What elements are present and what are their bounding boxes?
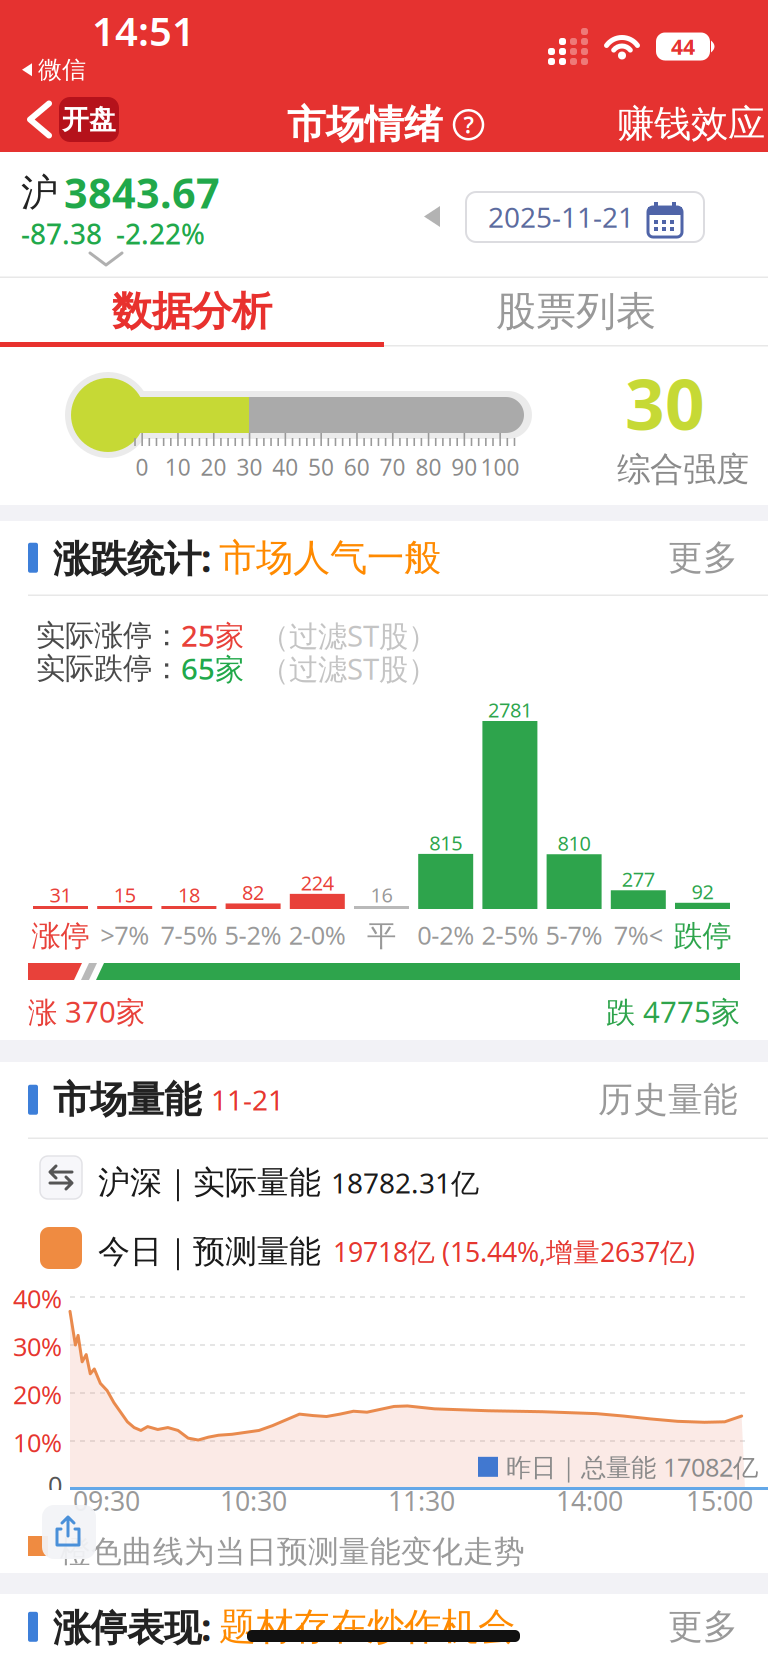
staticText: 市场量能 xyxy=(53,1077,201,1123)
staticText: 涨 370家 xyxy=(28,992,145,1031)
staticText: 市场情绪 xyxy=(287,101,443,148)
staticText: 题材存在炒作机会 xyxy=(219,1604,515,1650)
staticText: 09:30 xyxy=(73,1483,140,1518)
staticText: 2025-11-21 xyxy=(488,198,634,236)
staticText: 平 xyxy=(367,918,396,954)
staticText: 市场人气一般 xyxy=(219,535,441,581)
staticText: 10 xyxy=(165,452,191,482)
button[interactable]: Previous day xyxy=(424,206,440,227)
staticText: 涨停 xyxy=(31,918,89,954)
staticText: 股票列表 xyxy=(496,287,656,336)
staticText: 跌停 xyxy=(673,918,731,954)
staticText: 65家 xyxy=(181,649,244,688)
staticText: 14:51 xyxy=(92,4,195,57)
staticText: 18782.31亿 xyxy=(331,1164,479,1201)
staticText: 更多 xyxy=(668,536,738,579)
staticText: 2-5% xyxy=(481,918,538,952)
button[interactable]: Help xyxy=(453,109,484,140)
staticText: 10:30 xyxy=(220,1483,287,1518)
staticText: 实际涨停： xyxy=(36,617,181,653)
staticText: 40% xyxy=(13,1281,62,1315)
staticText: 815 xyxy=(429,829,462,856)
button[interactable]: 股票列表 xyxy=(384,281,768,342)
staticText: 14:00 xyxy=(556,1483,623,1518)
staticText: 50 xyxy=(308,452,334,482)
staticText: 实际跌停： xyxy=(36,650,181,686)
button[interactable]: 微信 xyxy=(22,55,86,84)
staticText: 0 xyxy=(48,1468,62,1502)
staticText: 16 xyxy=(370,881,392,908)
staticText: 100 xyxy=(480,452,519,482)
staticText: （过滤ST股） xyxy=(260,616,437,655)
staticText: 历史量能 xyxy=(598,1078,738,1121)
staticText: 19718亿 (15.44%,增量2637亿) xyxy=(333,1234,695,1269)
button[interactable]: 历史量能 xyxy=(598,1078,738,1121)
staticText: 80 xyxy=(415,452,441,482)
staticText: 沪 xyxy=(21,170,58,216)
button[interactable]: 数据分析 xyxy=(0,281,384,342)
staticText: 90 xyxy=(451,452,477,482)
staticText: 微信 xyxy=(38,55,86,84)
staticText: 涨停表现: xyxy=(53,1602,211,1652)
staticText: ? xyxy=(463,110,473,140)
button[interactable]: Collapse xyxy=(88,251,124,267)
staticText: 224 xyxy=(301,869,334,896)
staticText: 涨跌统计: xyxy=(53,533,211,583)
staticText: 赚钱效应 xyxy=(617,101,765,147)
staticText: 7-5% xyxy=(160,918,217,952)
staticText: 810 xyxy=(558,830,591,856)
staticText: 3843.67 xyxy=(64,165,220,220)
staticText: 30% xyxy=(13,1329,62,1363)
staticText: 数据分析 xyxy=(112,287,272,336)
staticText: >7% xyxy=(100,918,149,952)
staticText: 277 xyxy=(622,866,655,892)
staticText: 18 xyxy=(178,881,200,908)
staticText: 30 xyxy=(625,357,705,449)
staticText: 昨日｜总量能 17082亿 xyxy=(506,1450,758,1484)
staticText: 11-21 xyxy=(211,1081,284,1118)
staticText: 25家 xyxy=(181,616,244,655)
staticText: 7%< xyxy=(614,918,663,952)
staticText: 沪深｜实际量能 xyxy=(98,1163,321,1202)
button[interactable]: Back xyxy=(27,97,119,142)
staticText: 70 xyxy=(380,452,406,482)
staticText: 15:00 xyxy=(686,1483,753,1518)
staticText: 综合强度 xyxy=(617,449,749,490)
staticText: 0-2% xyxy=(417,918,474,952)
staticText: 20% xyxy=(13,1377,62,1411)
button[interactable]: Share xyxy=(42,1505,96,1559)
staticText: 82 xyxy=(242,879,264,906)
staticText: 60 xyxy=(344,452,370,482)
staticText: 橙色曲线为当日预测量能变化走势 xyxy=(60,1533,525,1571)
staticText: 11:30 xyxy=(388,1483,455,1518)
staticText: 2781 xyxy=(488,696,532,723)
staticText: 5-2% xyxy=(225,918,282,952)
staticText: 92 xyxy=(691,878,713,905)
staticText: 44 xyxy=(671,32,695,61)
staticText: 跌 4775家 xyxy=(606,992,740,1031)
staticText: 2-0% xyxy=(289,918,346,952)
staticText: 开盘 xyxy=(62,103,116,136)
staticText: 20 xyxy=(201,452,227,482)
staticText: 40 xyxy=(272,452,298,482)
staticText: 10% xyxy=(13,1425,62,1459)
staticText: （过滤ST股） xyxy=(260,649,437,688)
staticText: 30 xyxy=(236,452,262,482)
staticText: 31 xyxy=(49,881,71,908)
staticText: 15 xyxy=(114,881,136,908)
button[interactable]: 更多 xyxy=(668,536,738,579)
button[interactable]: Choose date xyxy=(466,192,704,242)
staticText: 今日｜预测量能 xyxy=(98,1232,321,1271)
staticText: 更多 xyxy=(668,1605,738,1648)
button[interactable]: 赚钱效应 xyxy=(617,101,765,147)
button[interactable]: 更多 xyxy=(668,1605,738,1648)
staticText: -87.38 -2.22% xyxy=(21,215,205,252)
staticText: 5-7% xyxy=(546,918,603,952)
staticText: 0 xyxy=(135,452,148,482)
